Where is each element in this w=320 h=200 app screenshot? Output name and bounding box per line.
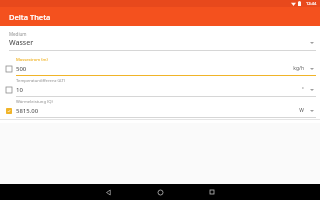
button[interactable]: Checked option xyxy=(4,106,13,115)
button[interactable]: Open dropdown xyxy=(308,65,316,73)
button[interactable]: Open dropdown xyxy=(308,86,316,94)
button[interactable]: Open dropdown xyxy=(308,39,316,47)
button[interactable]: Back xyxy=(93,184,123,200)
staticText: Massestrom (m) xyxy=(16,57,48,63)
staticText: 10 xyxy=(16,86,23,94)
staticText: 500 xyxy=(16,65,27,73)
staticText: Wärmeleistung (Q) xyxy=(16,99,53,105)
staticText: 5815.00 xyxy=(16,107,39,115)
button[interactable]: Home xyxy=(145,184,175,200)
staticText: W xyxy=(299,107,304,114)
button[interactable]: Unchecked option xyxy=(4,64,13,73)
button[interactable]: Unchecked option xyxy=(4,85,13,94)
staticText: kg/h xyxy=(293,65,304,72)
staticText: Medium xyxy=(9,31,27,37)
staticText: ° xyxy=(301,86,304,93)
button[interactable]: Open dropdown xyxy=(308,107,316,115)
staticText: 12:44 xyxy=(306,1,317,6)
staticText: Wasser xyxy=(9,38,308,48)
staticText: Delta Theta xyxy=(9,12,51,22)
button[interactable]: Recent apps xyxy=(197,184,227,200)
button[interactable]: Medium xyxy=(0,30,320,52)
staticText: Temperaturdifferenz (ΔT) xyxy=(16,78,66,84)
